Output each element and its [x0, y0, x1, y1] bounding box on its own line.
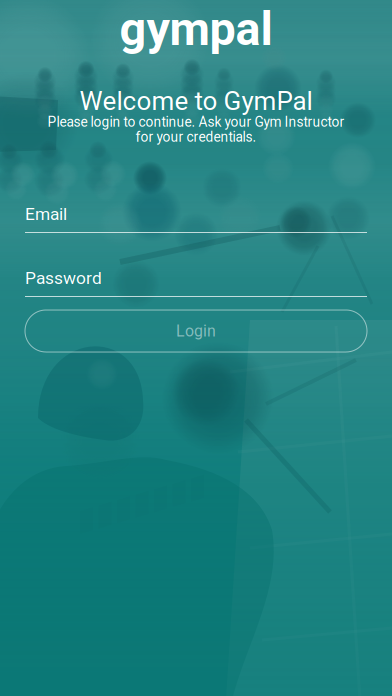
button[interactable]: Login: [25, 310, 367, 352]
staticText: for your credentials.: [135, 129, 256, 145]
staticText: Email: [25, 204, 67, 224]
staticText: Welcome to GymPal: [79, 86, 312, 116]
staticText: gympal: [119, 2, 272, 56]
button[interactable]: Email: [25, 205, 367, 234]
staticText: Please login to continue. Ask your Gym I…: [47, 114, 344, 130]
button[interactable]: Password: [25, 269, 367, 298]
staticText: Password: [25, 268, 102, 288]
staticText: Login: [176, 322, 216, 340]
